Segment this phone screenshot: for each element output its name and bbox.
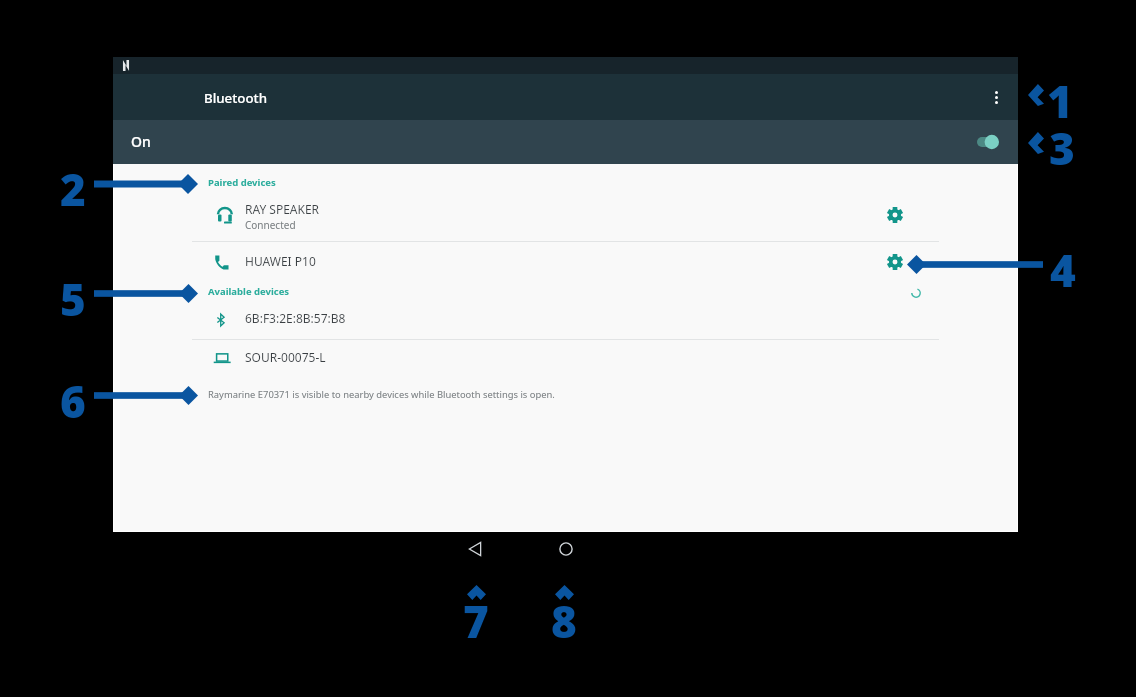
button[interactable]: Back [459, 538, 491, 560]
staticText: 1 [1047, 71, 1073, 131]
staticText: SOUR-00075-L [245, 349, 326, 365]
staticText: RAY SPEAKER [245, 201, 320, 217]
staticText: 6 [60, 371, 86, 431]
button[interactable]: HUAWEI P10 [113, 243, 1018, 281]
button[interactable]: Device settings [880, 247, 909, 276]
staticText: HUAWEI P10 [245, 253, 316, 269]
button[interactable]: 6B:F3:2E:8B:57:B8 [113, 300, 1018, 338]
button[interactable]: Bluetooth toggle [955, 131, 999, 153]
button[interactable]: On [113, 120, 1018, 164]
staticText: Raymarine E70371 is visible to nearby de… [208, 388, 555, 401]
staticText: 2 [60, 159, 86, 219]
staticText: 4 [1050, 240, 1076, 300]
staticText: On [131, 132, 151, 151]
button[interactable]: SOUR-00075-L [113, 340, 1018, 378]
staticText: 7 [463, 591, 489, 651]
staticText: Bluetooth [204, 89, 268, 107]
staticText: Paired devices [208, 176, 276, 189]
staticText: Connected [245, 218, 296, 232]
staticText: 8 [551, 591, 577, 651]
button[interactable]: RAY SPEAKER [113, 197, 1018, 241]
button[interactable]: More options [981, 82, 1011, 112]
staticText: 3 [1049, 118, 1075, 178]
staticText: Available devices [208, 285, 290, 298]
staticText: 5 [60, 269, 86, 329]
button[interactable]: Home [550, 538, 582, 560]
staticText: 6B:F3:2E:8B:57:B8 [245, 310, 346, 326]
button[interactable]: Device settings [880, 200, 909, 229]
